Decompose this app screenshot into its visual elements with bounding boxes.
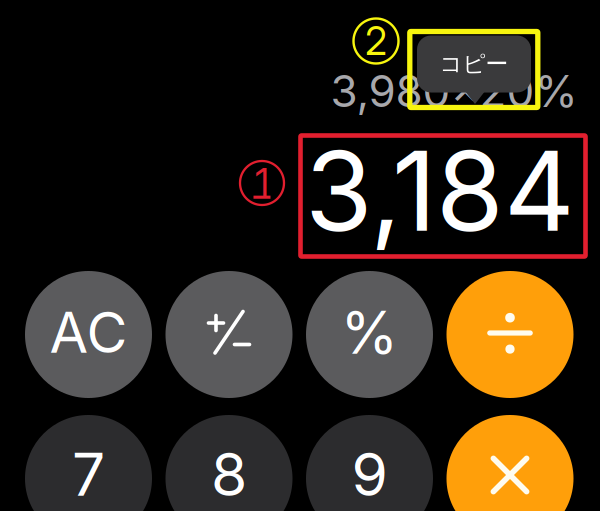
button[interactable]: Plus minus [165,271,292,398]
staticText: 8 [211,439,247,510]
button[interactable]: Percent [306,271,433,398]
staticText: 2 [365,18,387,64]
button[interactable]: Divide [446,271,573,398]
staticText: 7 [72,439,105,510]
button[interactable]: Nine [306,415,433,511]
button[interactable]: Multiply [446,415,573,511]
button[interactable]: Eight [165,415,292,511]
staticText: 9 [351,439,387,510]
button[interactable]: All clear [25,271,152,398]
staticText: % [340,297,398,368]
staticText: 3,980×20% [330,64,577,118]
staticText: 3,184 [305,125,575,257]
staticText: 1 [255,160,269,206]
button[interactable]: Seven [25,415,152,511]
staticText: コピー [439,50,508,78]
button[interactable]: コピー [417,35,531,92]
staticText: AC [49,299,127,366]
